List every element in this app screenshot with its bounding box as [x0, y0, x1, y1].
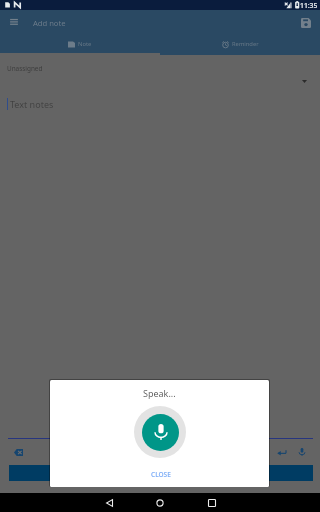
button[interactable]: Reminder	[160, 35, 320, 52]
button[interactable]: Voice input	[294, 444, 310, 460]
button[interactable]: Recent apps	[202, 493, 222, 512]
button[interactable]: CLOSE	[50, 469, 269, 487]
button[interactable]: Back	[99, 493, 119, 512]
button[interactable]: Backspace	[8, 444, 28, 460]
button[interactable]: Home	[150, 493, 170, 512]
staticText: Unassigned	[7, 64, 43, 73]
staticText: Text notes	[10, 98, 54, 110]
staticText: Speak...	[143, 387, 176, 399]
staticText: Add note	[33, 18, 66, 28]
staticText: 11:35	[300, 1, 318, 10]
button[interactable]: Start voice recognition	[134, 406, 186, 458]
staticText: Reminder	[232, 40, 259, 48]
staticText: Note	[78, 40, 92, 48]
button[interactable]: Open navigation drawer	[2, 10, 26, 34]
button[interactable]: Save	[295, 10, 317, 35]
button[interactable]: Return	[272, 444, 290, 460]
button[interactable]: Note	[0, 35, 160, 52]
staticText: CLOSE	[151, 470, 171, 479]
